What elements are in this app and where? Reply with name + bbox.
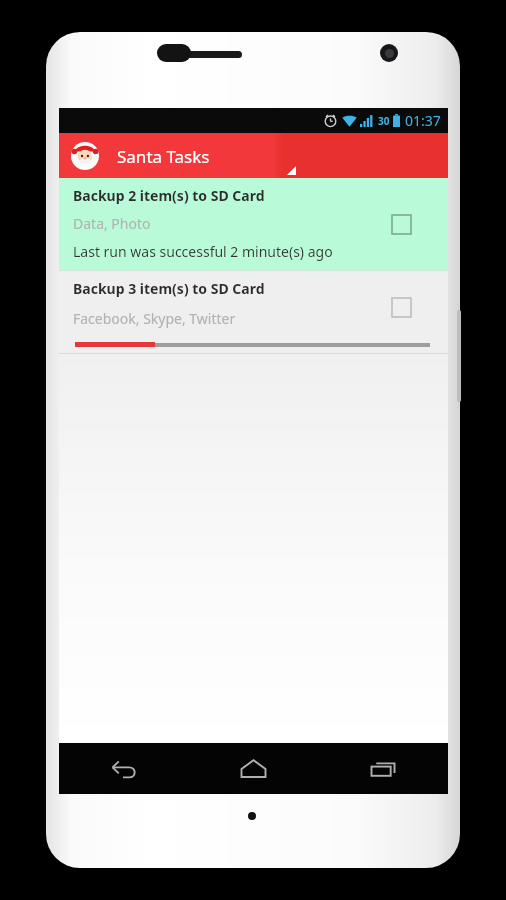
button[interactable]: Select task	[384, 207, 418, 241]
staticText: Backup 3 item(s) to SD Card	[73, 279, 265, 298]
other: Santa	[71, 142, 99, 170]
other: Open spinner	[287, 166, 296, 175]
staticText: Santa Tasks	[117, 145, 210, 168]
button[interactable]: Backup 2 item(s) to SD Card	[59, 178, 448, 270]
staticText: 30	[378, 114, 390, 128]
staticText: Backup 2 item(s) to SD Card	[73, 186, 265, 205]
staticText: Facebook, Skype, Twitter	[73, 309, 236, 328]
button[interactable]: Recent apps	[318, 743, 448, 794]
button[interactable]: Select task	[384, 290, 418, 324]
button[interactable]: Backup 3 item(s) to SD Card	[59, 271, 448, 353]
button[interactable]: Santa	[59, 133, 448, 178]
button[interactable]: Back	[59, 743, 188, 794]
button[interactable]: Home	[188, 743, 318, 794]
staticText: Last run was successful 2 minute(s) ago	[73, 242, 333, 261]
staticText: Data, Photo	[73, 214, 151, 233]
staticText: 01:37	[405, 111, 441, 130]
